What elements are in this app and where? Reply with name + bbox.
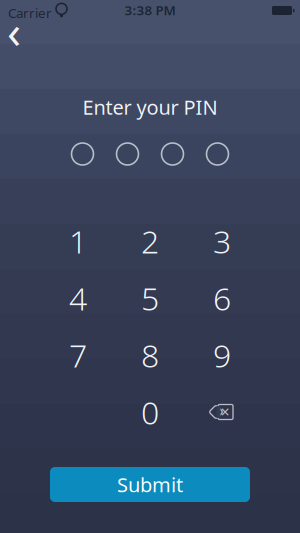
- staticText: 4: [69, 277, 87, 319]
- button[interactable]: 8: [117, 332, 183, 378]
- staticText: Enter your PIN: [82, 94, 217, 120]
- button[interactable]: 5: [117, 275, 183, 321]
- staticText: 2: [141, 220, 159, 262]
- staticText: 3: [213, 220, 231, 262]
- button[interactable]: 4: [45, 275, 111, 321]
- staticText: ×: [220, 401, 229, 422]
- staticText: 8: [141, 334, 159, 376]
- staticText: 0: [141, 391, 159, 433]
- staticText: 6: [213, 277, 231, 319]
- staticText: Submit: [117, 471, 183, 498]
- button[interactable]: Submit: [50, 467, 250, 502]
- button[interactable]: 1: [45, 218, 111, 264]
- staticText: 1: [69, 220, 87, 262]
- button[interactable]: 6: [189, 275, 255, 321]
- button[interactable]: 0: [117, 389, 183, 435]
- staticText: Carrier: [8, 4, 52, 22]
- button[interactable]: 9: [189, 332, 255, 378]
- button[interactable]: 3: [189, 218, 255, 264]
- button[interactable]: Back: [0, 14, 34, 48]
- button[interactable]: Delete: [189, 389, 255, 435]
- staticText: 7: [69, 334, 87, 376]
- button[interactable]: 7: [45, 332, 111, 378]
- staticText: 3:38 PM: [124, 1, 175, 19]
- staticText: ‹: [7, 1, 21, 61]
- staticText: 5: [141, 277, 159, 319]
- staticText: 9: [213, 334, 231, 376]
- button[interactable]: 2: [117, 218, 183, 264]
